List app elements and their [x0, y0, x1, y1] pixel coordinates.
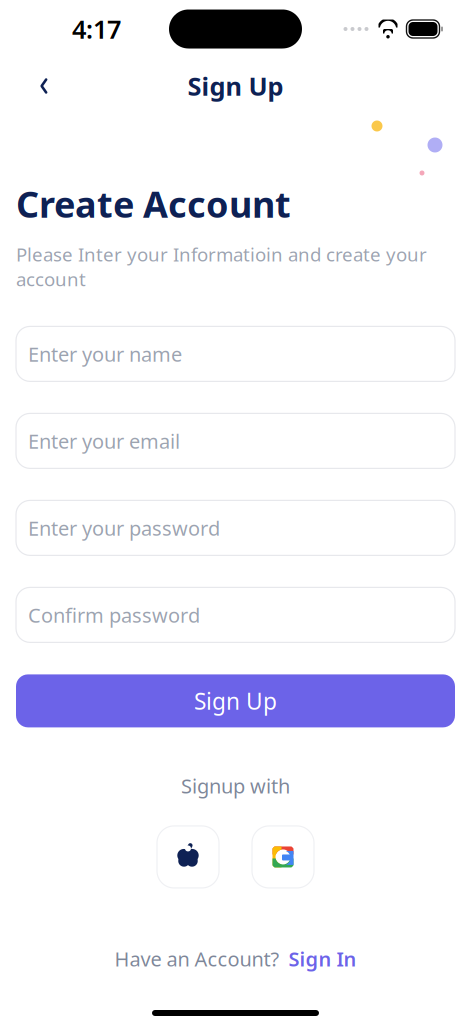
staticText: Create Account [16, 180, 291, 228]
button[interactable]: Enter your password [16, 500, 455, 555]
staticText: Sign Up [187, 69, 283, 103]
button[interactable]: Enter your name [16, 326, 455, 381]
staticText: Have an Account? [114, 945, 279, 972]
staticText: 4:17 [72, 12, 121, 46]
staticText: Sign Up [194, 686, 277, 716]
button[interactable]: Confirm password [16, 587, 455, 642]
button[interactable]: Sign up with Apple [157, 826, 219, 888]
staticText: Enter your password [28, 515, 220, 541]
staticText: Signup with [181, 772, 290, 799]
staticText: Confirm password [28, 602, 200, 628]
button[interactable]: Back [22, 64, 66, 108]
staticText: Please Inter your Informatioin and creat… [16, 242, 427, 291]
button[interactable]: Enter your email [16, 413, 455, 468]
button[interactable]: Sign up with Google [252, 826, 314, 888]
staticText: Enter your name [28, 341, 182, 367]
staticText: Enter your email [28, 428, 180, 454]
button[interactable]: Have an Account? [104, 937, 366, 980]
staticText: Sign In [288, 945, 356, 972]
button[interactable]: Sign Up [16, 674, 455, 727]
